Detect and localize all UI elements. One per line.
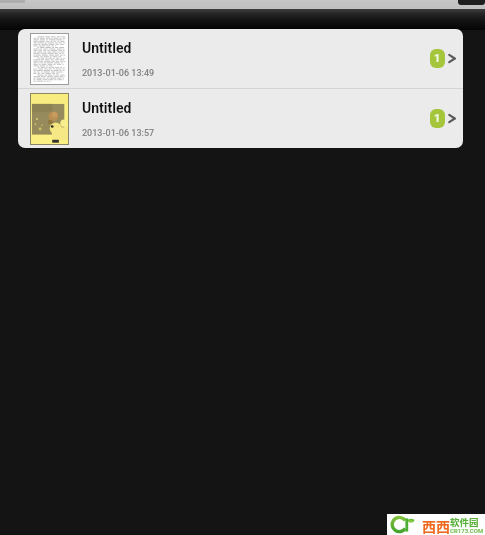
staticText: 软件园 bbox=[450, 515, 479, 529]
staticText: Untitled bbox=[82, 100, 132, 116]
staticText: 2013-01-06 13:49 bbox=[82, 68, 155, 79]
other: Open note bbox=[448, 54, 456, 63]
other: Open note bbox=[448, 114, 456, 123]
staticText: 1 bbox=[434, 52, 441, 65]
staticText: 2013-01-06 13:57 bbox=[82, 128, 155, 139]
staticText: 1 bbox=[434, 112, 441, 125]
staticText: Untitled bbox=[82, 40, 132, 56]
button[interactable]: Untitled bbox=[18, 89, 463, 148]
staticText: CR173.COM bbox=[450, 527, 484, 534]
staticText: 西西 bbox=[422, 516, 450, 535]
button[interactable]: Untitled bbox=[18, 29, 463, 88]
